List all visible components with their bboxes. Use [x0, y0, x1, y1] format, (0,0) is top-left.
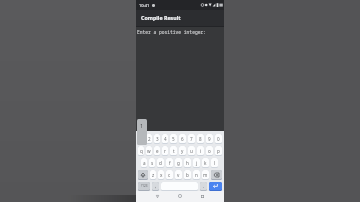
staticText: 3 — [156, 136, 159, 142]
staticText: p — [217, 148, 220, 154]
staticText: i — [200, 148, 202, 154]
button[interactable]: . — [200, 182, 207, 191]
button[interactable]: q — [138, 146, 144, 156]
staticText: h — [186, 160, 189, 166]
button[interactable] — [209, 182, 222, 191]
button[interactable]: u — [188, 146, 195, 156]
staticText: o — [208, 148, 211, 154]
button[interactable]: 5 — [170, 134, 177, 144]
staticText: r — [164, 148, 166, 154]
button[interactable]: 9 — [206, 134, 213, 144]
staticText: s — [151, 160, 154, 166]
button[interactable]: a — [141, 158, 147, 168]
staticText: n — [195, 172, 198, 178]
button[interactable]: x — [158, 170, 164, 180]
staticText: 10:41 — [139, 3, 150, 8]
button[interactable]: l — [211, 158, 218, 168]
button[interactable]: v — [175, 170, 182, 180]
staticText: Compile Result — [141, 14, 181, 21]
staticText: j — [196, 160, 198, 166]
button[interactable]: 4 — [162, 134, 168, 144]
button[interactable]: 3 — [154, 134, 160, 144]
staticText: Enter a positive integer: — [137, 29, 206, 35]
button[interactable] — [161, 182, 198, 191]
staticText: w — [147, 148, 151, 154]
button[interactable]: 8 — [197, 134, 204, 144]
staticText: 6 — [181, 136, 184, 142]
button[interactable]: s — [149, 158, 155, 168]
button[interactable]: o — [206, 146, 213, 156]
button[interactable] — [176, 192, 184, 200]
button[interactable] — [154, 192, 161, 200]
staticText: c — [168, 172, 171, 178]
staticText: a — [143, 160, 146, 166]
button[interactable]: j — [193, 158, 200, 168]
staticText: 1 — [140, 122, 144, 129]
button[interactable]: p — [215, 146, 222, 156]
button[interactable]: e — [154, 146, 160, 156]
button[interactable]: h — [184, 158, 191, 168]
staticText: 4 — [164, 136, 167, 142]
staticText: e — [156, 148, 159, 154]
button[interactable]: 0 — [215, 134, 222, 144]
staticText: u — [190, 148, 193, 154]
staticText: g — [177, 160, 180, 166]
button[interactable]: b — [184, 170, 191, 180]
button[interactable]: g — [175, 158, 182, 168]
button[interactable]: k — [202, 158, 209, 168]
staticText: f — [169, 160, 171, 166]
button[interactable]: 6 — [179, 134, 186, 144]
staticText: 2 — [148, 136, 151, 142]
staticText: l — [214, 160, 216, 166]
button[interactable]: m — [202, 170, 209, 180]
button[interactable] — [138, 170, 148, 180]
button[interactable]: 7 — [188, 134, 195, 144]
staticText: . — [203, 183, 205, 189]
staticText: 0 — [217, 136, 220, 142]
staticText: z — [152, 172, 155, 178]
staticText: v — [177, 172, 180, 178]
staticText: m — [203, 172, 208, 178]
staticText: b — [186, 172, 189, 178]
button[interactable]: ?123 — [138, 182, 150, 191]
button[interactable]: t — [170, 146, 177, 156]
button[interactable]: z — [150, 170, 156, 180]
button[interactable]: 2 — [146, 134, 152, 144]
staticText: d — [159, 160, 162, 166]
button[interactable]: Compile Result — [136, 10, 224, 26]
staticText: q — [140, 148, 143, 154]
button[interactable]: d — [157, 158, 164, 168]
button[interactable]: f — [166, 158, 173, 168]
staticText: , — [155, 183, 157, 189]
button[interactable]: y — [179, 146, 186, 156]
button[interactable]: w — [146, 146, 152, 156]
staticText: 9 — [208, 136, 211, 142]
staticText: x — [160, 172, 163, 178]
staticText: 5 — [172, 136, 175, 142]
button[interactable]: r — [162, 146, 168, 156]
staticText: ?123 — [141, 184, 148, 188]
staticText: t — [173, 148, 175, 154]
button[interactable]: c — [166, 170, 173, 180]
staticText: 7 — [190, 136, 193, 142]
button[interactable]: i — [197, 146, 204, 156]
staticText: y — [181, 148, 184, 154]
button[interactable] — [211, 170, 222, 180]
button[interactable]: , — [152, 182, 159, 191]
staticText: 8 — [199, 136, 202, 142]
button[interactable] — [198, 192, 206, 200]
staticText: k — [204, 160, 207, 166]
button[interactable]: n — [193, 170, 200, 180]
